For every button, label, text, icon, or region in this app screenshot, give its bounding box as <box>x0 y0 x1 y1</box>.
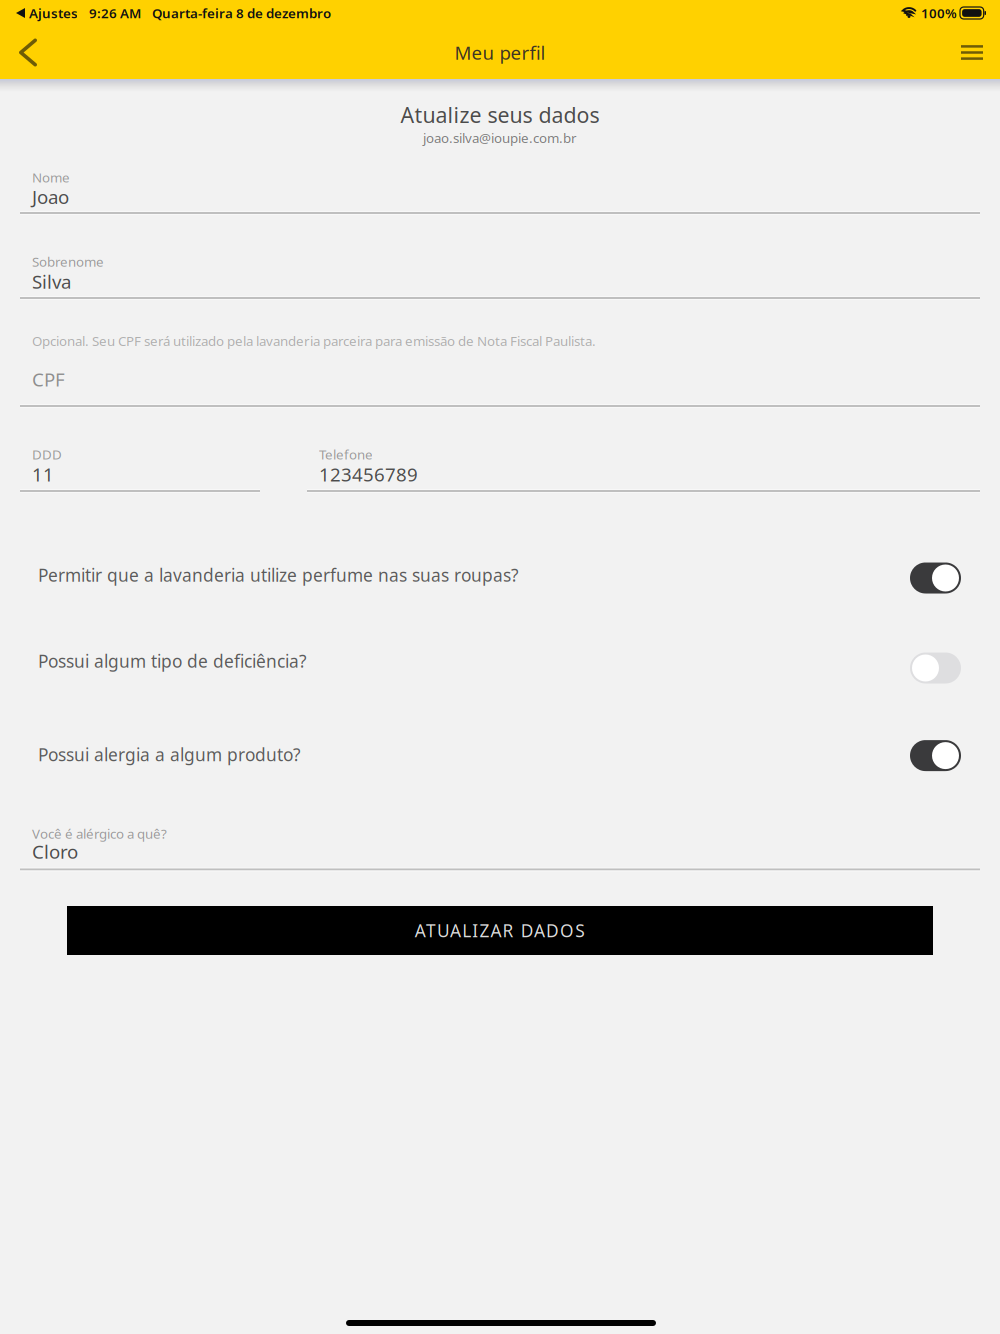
staticText: 100% <box>921 4 957 22</box>
button[interactable]: Permitir que a lavanderia utilize perfum… <box>0 0 960 44</box>
staticText: Meu perfil <box>454 40 545 65</box>
staticText: Quarta-feira 8 de dezembro <box>152 4 331 22</box>
staticText: Possui algum tipo de deficiência? <box>38 649 307 672</box>
staticText: Possui alergia a algum produto? <box>38 743 301 766</box>
staticText: Nome <box>32 168 70 186</box>
button[interactable]: Back <box>0 26 56 78</box>
button[interactable]: Possui alergia a algum produto? <box>0 0 960 44</box>
staticText: Joao <box>32 184 69 209</box>
staticText: Você é alérgico a quê? <box>32 825 167 842</box>
staticText: Ajustes <box>29 4 78 22</box>
button[interactable]: Possui algum tipo de deficiência? <box>0 0 960 44</box>
staticText: Telefone <box>319 445 373 463</box>
staticText: CPF <box>32 367 65 392</box>
staticText: ATUALIZAR DADOS <box>415 919 585 942</box>
staticText: 123456789 <box>319 462 418 487</box>
button[interactable]: Menu <box>941 26 1000 79</box>
staticText: 9:26 AM <box>89 4 141 22</box>
staticText: Permitir que a lavanderia utilize perfum… <box>38 563 519 586</box>
button[interactable]: ATUALIZAR DADOS <box>67 906 933 955</box>
staticText: Cloro <box>32 839 78 864</box>
staticText: 11 <box>32 462 54 487</box>
staticText: Opcional. Seu CPF será utilizado pela la… <box>32 332 596 350</box>
staticText: Silva <box>32 269 71 294</box>
staticText: joao.silva@ioupie.com.br <box>423 129 577 147</box>
staticText: DDD <box>32 445 62 463</box>
staticText: Sobrenome <box>32 253 104 270</box>
staticText: Atualize seus dados <box>400 100 599 129</box>
